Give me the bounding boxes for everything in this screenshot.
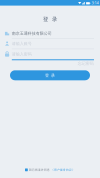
staticText: 我已阅读并同意 — [29, 168, 50, 171]
button[interactable]: 我已阅读并同意 — [25, 168, 75, 171]
staticText: 请输入密码 — [12, 52, 32, 57]
staticText: 登 录 — [43, 16, 57, 22]
staticText: 请输入账号 — [12, 41, 32, 46]
button[interactable]: 忘记密码 — [78, 61, 100, 66]
staticText: 登 录 — [45, 73, 55, 78]
staticText: 忘记密码 — [78, 61, 94, 66]
staticText: 3:14 — [91, 0, 98, 5]
staticText: 《用户服务协议》 — [51, 168, 75, 171]
button[interactable]: 登 录 — [10, 70, 90, 80]
staticText: 南京玉通科技有限公司 — [12, 31, 52, 36]
